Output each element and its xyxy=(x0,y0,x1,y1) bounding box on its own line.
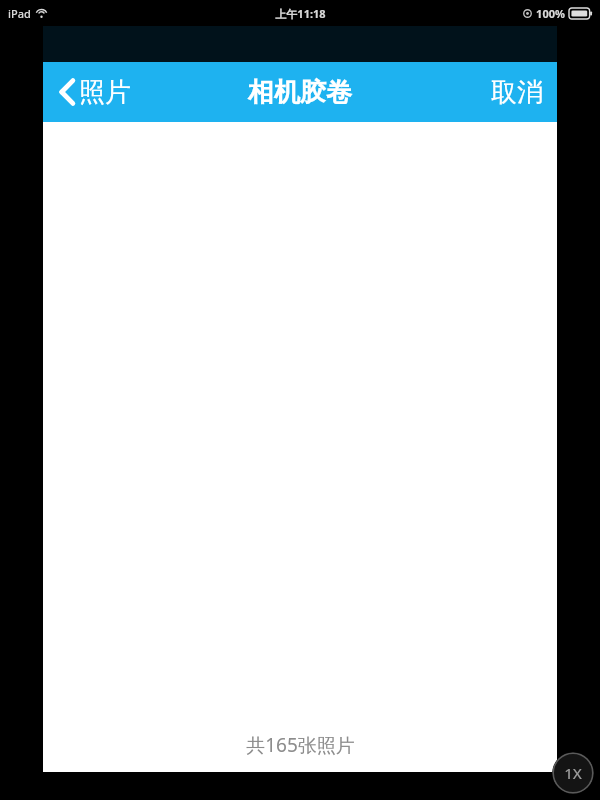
button[interactable]: Zoom 1X xyxy=(552,752,594,794)
staticText: 共165张照片 xyxy=(246,732,355,758)
staticText: 1X xyxy=(564,763,582,783)
staticText: iPad xyxy=(8,6,31,21)
staticText: 取消 xyxy=(491,76,543,109)
button[interactable]: 取消 xyxy=(477,62,557,122)
staticText: 上午11:18 xyxy=(275,6,326,21)
button[interactable]: 照片 xyxy=(43,62,143,122)
staticText: 相机胶卷 xyxy=(248,76,352,109)
staticText: 照片 xyxy=(79,76,131,109)
staticText: 100% xyxy=(536,6,565,21)
